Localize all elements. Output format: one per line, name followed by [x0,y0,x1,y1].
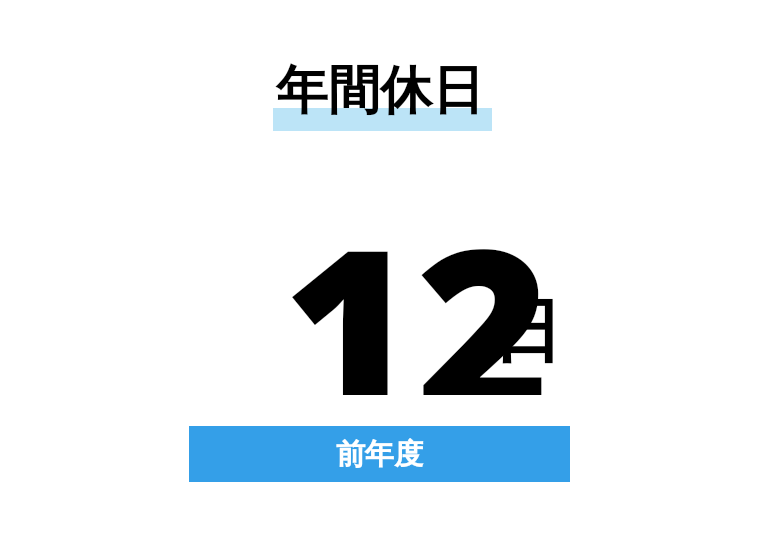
staticText: 128 [150,170,550,395]
button[interactable]: 前年度 [189,426,570,482]
staticText: 日 [492,288,562,376]
staticText: 前年度 [336,436,423,473]
staticText: 年間休日 [276,58,484,124]
